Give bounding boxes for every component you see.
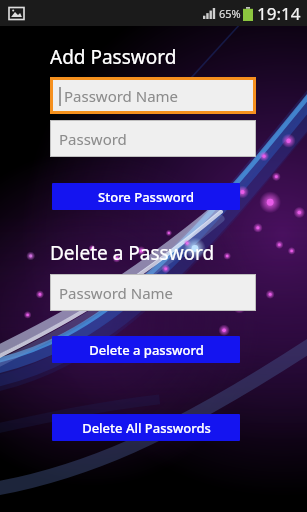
button[interactable]: Password Name [50, 274, 256, 311]
staticText: 65% [219, 6, 241, 21]
button[interactable]: Password [50, 120, 256, 157]
button[interactable]: Password Name [50, 77, 256, 114]
other: Gallery notification [9, 6, 24, 21]
button[interactable]: Delete All Passwords [52, 414, 240, 441]
staticText: Password Name [59, 283, 174, 303]
button[interactable]: Delete a password [52, 336, 240, 363]
staticText: Delete a password [89, 341, 204, 359]
staticText: Delete a Password [50, 240, 215, 266]
button[interactable]: Store Password [52, 183, 240, 210]
staticText: Delete All Passwords [82, 419, 211, 437]
staticText: Password Name [64, 86, 179, 106]
staticText: Password [59, 129, 127, 149]
staticText: Store Password [98, 188, 194, 206]
staticText: Add Password [50, 44, 177, 70]
staticText: 19:14 [257, 2, 301, 25]
